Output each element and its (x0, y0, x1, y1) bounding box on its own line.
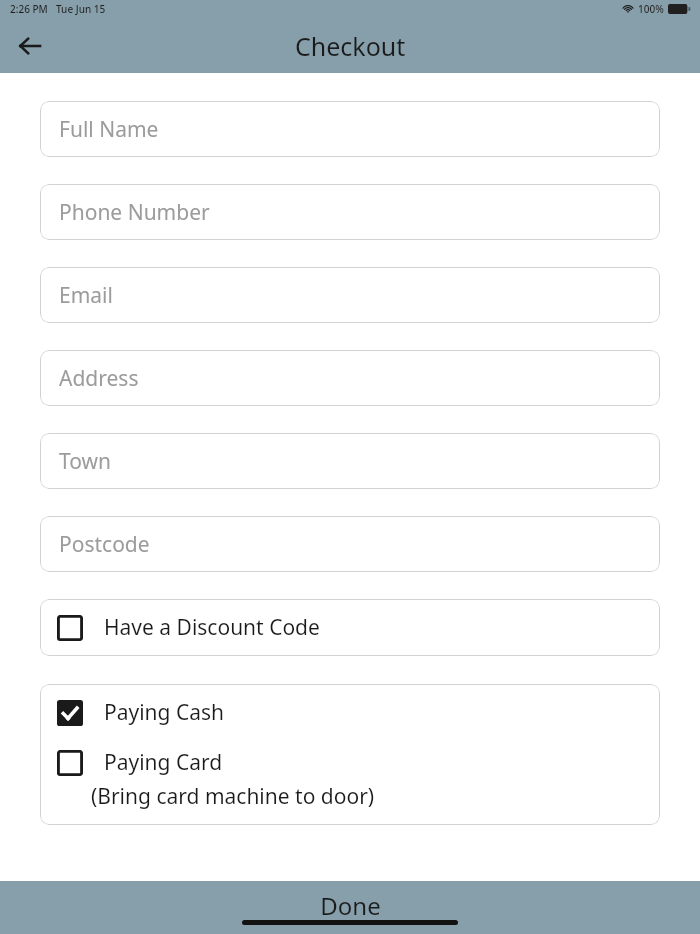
staticText: Town (59, 447, 111, 476)
staticText: Email (59, 281, 113, 310)
button[interactable]: Done (302, 887, 399, 924)
staticText: Done (320, 889, 381, 922)
staticText: Checkout (295, 29, 406, 63)
button[interactable]: Full Name (40, 101, 660, 157)
button[interactable]: Paying Card (57, 748, 648, 811)
button[interactable]: Have a Discount Code (40, 599, 660, 656)
button[interactable]: Email (40, 267, 660, 323)
staticText: 100% (638, 2, 664, 16)
button[interactable]: Address (40, 350, 660, 406)
button[interactable]: Back (8, 24, 52, 68)
staticText: Postcode (59, 530, 150, 559)
staticText: Paying Cash (104, 698, 225, 727)
staticText: Full Name (59, 115, 159, 144)
staticText: Tue Jun 15 (56, 2, 106, 16)
button[interactable]: Phone Number (40, 184, 660, 240)
staticText: Phone Number (59, 198, 210, 227)
staticText: Have a Discount Code (104, 613, 320, 642)
button[interactable]: Postcode (40, 516, 660, 572)
staticText: 2:26 PM (10, 2, 48, 16)
staticText: (Bring card machine to door) (91, 782, 375, 811)
staticText: Paying Card (104, 748, 223, 777)
staticText: Address (59, 364, 139, 393)
button[interactable]: Town (40, 433, 660, 489)
button[interactable]: Paying Cash (57, 698, 648, 727)
